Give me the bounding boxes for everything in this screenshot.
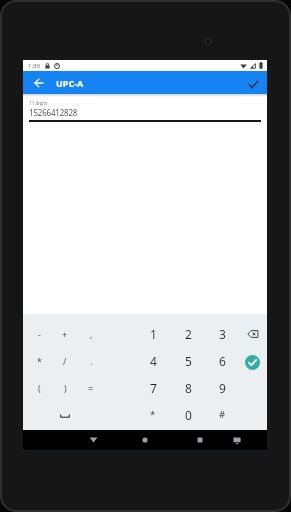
button[interactable]: * bbox=[138, 401, 168, 428]
button[interactable] bbox=[81, 430, 106, 450]
staticText: 1:30 bbox=[28, 62, 40, 70]
button[interactable] bbox=[245, 355, 260, 370]
staticText: ) bbox=[64, 382, 67, 394]
staticText: = bbox=[88, 382, 94, 394]
staticText: / bbox=[63, 355, 67, 367]
button[interactable] bbox=[23, 71, 54, 94]
button[interactable]: , bbox=[78, 320, 104, 347]
staticText: . bbox=[90, 355, 93, 367]
button[interactable]: = bbox=[78, 374, 104, 401]
button[interactable]: - bbox=[26, 320, 52, 347]
button[interactable]: * bbox=[26, 347, 52, 374]
button[interactable]: + bbox=[52, 320, 78, 347]
staticText: 2 bbox=[185, 326, 192, 342]
staticText: , bbox=[90, 328, 93, 340]
button[interactable] bbox=[239, 71, 267, 94]
button[interactable]: 4 bbox=[138, 347, 168, 374]
button[interactable]: ) bbox=[52, 374, 78, 401]
button[interactable]: ( bbox=[26, 374, 52, 401]
staticText: * bbox=[150, 408, 156, 421]
button[interactable]: # bbox=[207, 401, 237, 428]
button[interactable]: 11 digits bbox=[29, 100, 261, 122]
button[interactable]: 6 bbox=[207, 347, 237, 374]
staticText: * bbox=[37, 355, 42, 367]
staticText: + bbox=[62, 328, 68, 340]
button[interactable]: 7 bbox=[138, 374, 168, 401]
button[interactable]: / bbox=[52, 347, 78, 374]
button[interactable]: . bbox=[78, 347, 104, 374]
button[interactable]: 1 bbox=[138, 320, 168, 347]
button[interactable]: 0 bbox=[173, 401, 203, 428]
staticText: 11 digits bbox=[29, 100, 48, 106]
staticText: 5 bbox=[185, 353, 192, 369]
button[interactable]: 8 bbox=[173, 374, 203, 401]
button[interactable] bbox=[238, 320, 267, 347]
button[interactable] bbox=[188, 430, 212, 450]
staticText: 0 bbox=[185, 407, 192, 423]
staticText: 15266412828 bbox=[29, 107, 78, 118]
staticText: 4 bbox=[150, 353, 157, 369]
staticText: 1 bbox=[150, 326, 157, 342]
staticText: UPC-A bbox=[56, 77, 84, 89]
button[interactable]: 2 bbox=[173, 320, 203, 347]
button[interactable]: 9 bbox=[207, 374, 237, 401]
staticText: ( bbox=[38, 382, 41, 394]
staticText: 3 bbox=[219, 326, 226, 342]
staticText: 7 bbox=[150, 380, 157, 396]
staticText: # bbox=[219, 408, 226, 421]
staticText: 9 bbox=[219, 380, 226, 396]
button[interactable] bbox=[133, 430, 157, 450]
button[interactable]: 5 bbox=[173, 347, 203, 374]
staticText: - bbox=[38, 328, 41, 340]
button[interactable] bbox=[52, 401, 78, 428]
staticText: 6 bbox=[219, 353, 226, 369]
button[interactable]: 3 bbox=[207, 320, 237, 347]
staticText: 8 bbox=[185, 380, 192, 396]
button[interactable] bbox=[226, 430, 248, 450]
